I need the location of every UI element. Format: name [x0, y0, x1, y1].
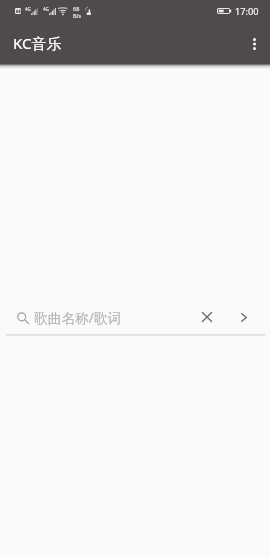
staticText: 歌曲名称/歌词	[34, 308, 122, 327]
staticText: 4G	[43, 6, 49, 12]
button[interactable]: 歌曲名称/歌词	[0, 301, 270, 335]
button[interactable]: Clear	[190, 301, 224, 335]
button[interactable]: Search	[227, 301, 261, 335]
staticText: 17:00	[235, 5, 259, 18]
staticText: B/s	[73, 12, 82, 19]
staticText: KC音乐	[13, 33, 62, 53]
staticText: 4G	[25, 6, 31, 12]
staticText: 68	[73, 5, 80, 12]
button[interactable]: More options	[238, 22, 270, 64]
